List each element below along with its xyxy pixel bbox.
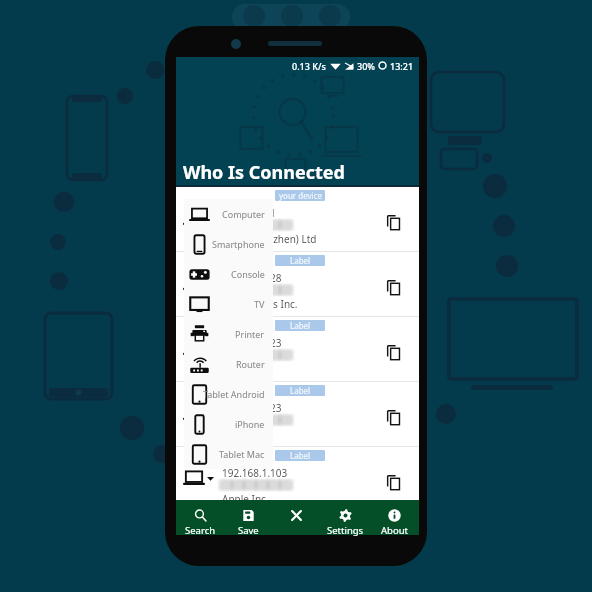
staticText: 192.168.1.103 [222,466,288,480]
staticText: iPhone [235,418,265,430]
staticText: 30% [357,60,375,72]
button[interactable]: Copy [380,404,406,430]
button[interactable]: Printer [184,319,273,349]
button[interactable]: Smartphone [184,229,273,259]
staticText: Label [290,320,311,331]
button[interactable]: 192.168.1.103 [176,447,419,500]
staticText: Console [231,268,265,280]
button[interactable]: Console [184,259,273,289]
button[interactable]: Tablet Android [184,379,273,409]
button[interactable]: 192.168.1.23 [176,382,419,446]
staticText: 192.168.1.23 [222,336,282,350]
staticText: Settings [327,524,364,537]
staticText: Tablet Android [203,388,265,400]
staticText: Label [290,255,311,266]
button[interactable]: Copy [380,469,406,495]
button[interactable]: 192.168.1.23 [176,317,419,381]
button[interactable]: About [370,500,419,535]
staticText: xxx Ltd. [222,362,259,376]
button[interactable]: Router [184,349,273,379]
staticText: 0.13 K/s [292,60,326,72]
staticText: 13:21 [390,60,414,72]
staticText: your device [279,190,322,201]
button[interactable]: Computer [184,199,273,229]
staticText: xxxh (Shenzhen) Ltd [222,232,317,246]
button[interactable]: Close [272,500,321,535]
staticText: Apple Inc. [222,492,269,506]
button[interactable]: Copy [380,209,406,235]
button[interactable]: 192.168.1.28 [176,252,419,316]
button[interactable]: Copy [380,274,406,300]
staticText: 192.168.1.28 [222,271,282,285]
button[interactable]: Search [176,500,224,535]
button[interactable]: Save [224,500,272,535]
staticText: Save [238,524,259,537]
staticText: Label [290,450,311,461]
staticText: Printer [235,328,265,340]
staticText: xxxnologies Inc. [222,297,298,311]
button[interactable]: iPhone [184,409,273,439]
button[interactable]: Settings [321,500,370,535]
staticText: Search [185,524,216,537]
staticText: TV [254,298,265,310]
button[interactable]: Tablet Mac [184,439,273,469]
staticText: Smartphone [212,238,265,250]
staticText: Label [290,385,311,396]
button[interactable]: Copy [380,339,406,365]
staticText: Computer [222,208,265,220]
staticText: 192.168.1.23 [222,401,282,415]
staticText: Router [236,358,265,370]
staticText: Tablet Mac [219,448,265,460]
staticText: 192.168.1.1 [222,206,276,220]
staticText: Who Is Connected [183,160,345,185]
staticText: About [381,524,408,537]
staticText: xxx Ltd. [222,427,259,441]
button[interactable]: TV [184,289,273,319]
button[interactable]: 192.168.1.1 [176,187,419,251]
